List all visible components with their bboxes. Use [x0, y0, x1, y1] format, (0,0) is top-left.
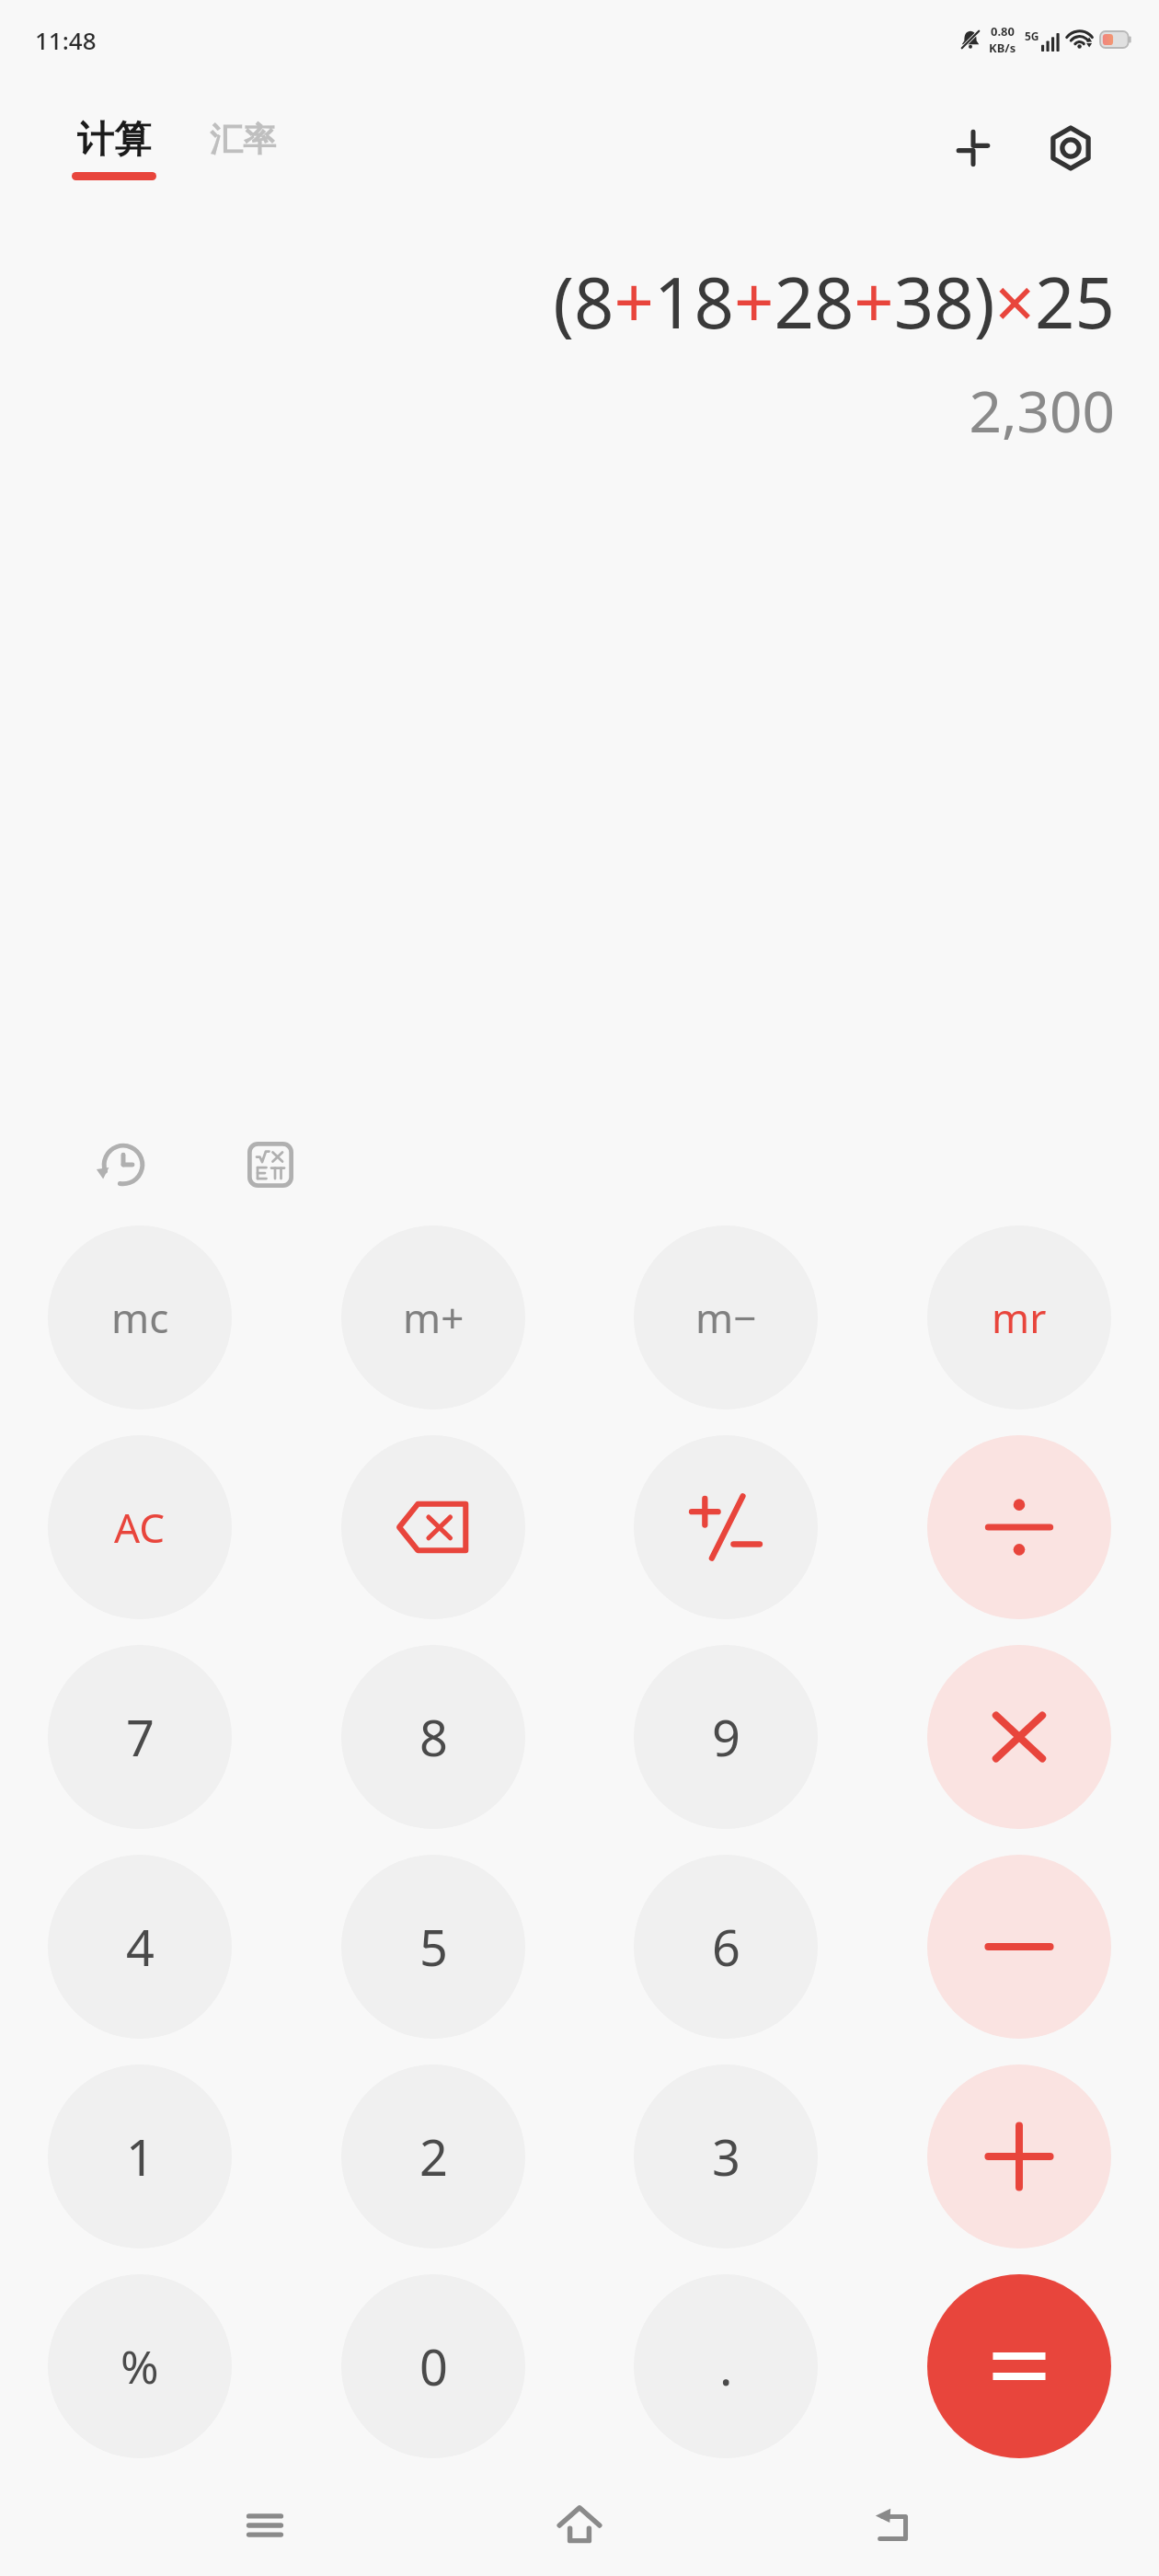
button[interactable]: 4 [48, 1855, 232, 2039]
button[interactable]: 计算 [68, 110, 160, 186]
staticText: AC [114, 1500, 166, 1555]
button[interactable]: History [88, 1130, 158, 1200]
button[interactable]: Plus [927, 2064, 1111, 2248]
button[interactable]: Backspace [341, 1435, 525, 1619]
staticText: 汇率 [210, 119, 276, 160]
staticText: 11:48 [35, 24, 97, 56]
staticText: 8 [419, 1703, 448, 1771]
button[interactable]: . [634, 2274, 818, 2458]
staticText: 计算 [77, 116, 151, 162]
staticText: 5G [1025, 29, 1039, 43]
staticText: mc [111, 1290, 169, 1345]
staticText: 0.80 [991, 23, 1015, 40]
button[interactable]: Scientific functions [235, 1130, 305, 1200]
staticText: m− [695, 1290, 757, 1345]
button[interactable]: 1 [48, 2064, 232, 2248]
button[interactable]: mr [927, 1225, 1111, 1409]
staticText: 3 [712, 2122, 740, 2191]
button[interactable]: Recent apps [214, 2475, 316, 2576]
button[interactable]: Divide [927, 1435, 1111, 1619]
button[interactable]: 7 [48, 1645, 232, 1829]
staticText: 2 [419, 2122, 448, 2191]
button[interactable]: Settings [1034, 111, 1107, 185]
staticText: 5 [419, 1913, 448, 1981]
button[interactable]: 汇率 [206, 113, 280, 184]
staticText: KB/s [989, 40, 1016, 56]
button[interactable]: 9 [634, 1645, 818, 1829]
button[interactable]: Home [529, 2475, 630, 2576]
staticText: mr [992, 1290, 1047, 1345]
button[interactable]: 0 [341, 2274, 525, 2458]
button[interactable]: 3 [634, 2064, 818, 2248]
staticText: 1 [126, 2122, 155, 2191]
staticText: 0 [419, 2332, 448, 2400]
button[interactable]: Equals [927, 2274, 1111, 2458]
staticText: 2,300 [969, 372, 1115, 449]
button[interactable]: % [48, 2274, 232, 2458]
staticText: m+ [403, 1290, 465, 1345]
button[interactable]: 5 [341, 1855, 525, 2039]
staticText: . [719, 2332, 733, 2400]
button[interactable]: Multiply [927, 1645, 1111, 1829]
button[interactable]: m− [634, 1225, 818, 1409]
staticText: (8+18+28+38)×25 [553, 254, 1115, 350]
button[interactable]: AC [48, 1435, 232, 1619]
button[interactable]: 8 [341, 1645, 525, 1829]
button[interactable]: Unit converter [936, 111, 1010, 185]
button[interactable]: Minus [927, 1855, 1111, 2039]
staticText: 4 [126, 1913, 155, 1981]
button[interactable]: mc [48, 1225, 232, 1409]
staticText: 9 [712, 1703, 740, 1771]
button[interactable]: m+ [341, 1225, 525, 1409]
staticText: 7 [126, 1703, 155, 1771]
staticText: % [120, 2335, 159, 2398]
button[interactable]: 6 [634, 1855, 818, 2039]
button[interactable]: Back [844, 2475, 946, 2576]
button[interactable]: Plus minus [634, 1435, 818, 1619]
staticText: 6 [712, 1913, 740, 1981]
button[interactable]: 2 [341, 2064, 525, 2248]
